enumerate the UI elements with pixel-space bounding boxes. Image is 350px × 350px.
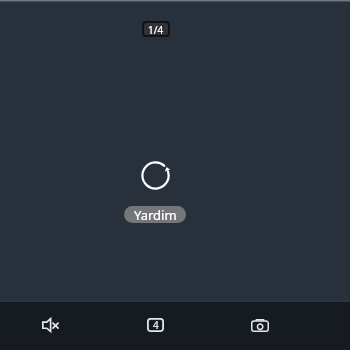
button[interactable]: Yardim bbox=[124, 206, 186, 223]
staticText: Yardim bbox=[134, 206, 177, 223]
button[interactable]: Page count bbox=[133, 303, 177, 347]
button[interactable]: 1/4 bbox=[142, 21, 170, 37]
staticText: 4 bbox=[153, 318, 159, 332]
button[interactable]: Mute bbox=[28, 303, 72, 347]
button[interactable]: Camera bbox=[238, 303, 282, 347]
staticText: 1/4 bbox=[148, 23, 164, 35]
button[interactable]: Rotate bbox=[137, 157, 174, 194]
